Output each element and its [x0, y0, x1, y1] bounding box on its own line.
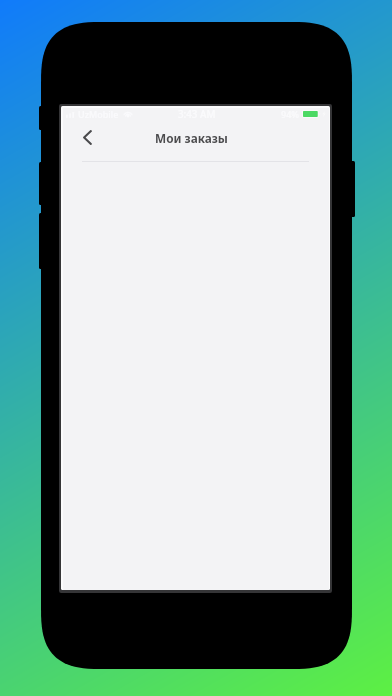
- button[interactable]: Back: [70, 120, 104, 154]
- staticText: Мои заказы: [155, 130, 228, 146]
